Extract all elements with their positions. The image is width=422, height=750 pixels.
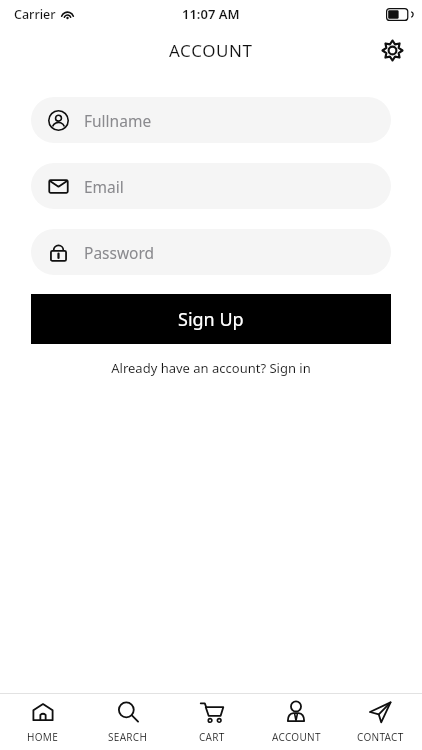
staticText: Carrier: [14, 6, 56, 23]
button[interactable]: Fullname: [31, 97, 391, 143]
staticText: Fullname: [84, 110, 152, 131]
staticText: Email: [84, 176, 124, 197]
staticText: ACCOUNT: [169, 39, 253, 62]
button[interactable]: SEARCH: [85, 694, 170, 750]
button[interactable]: Settings: [376, 34, 408, 66]
staticText: CART: [199, 730, 225, 744]
staticText: Password: [84, 242, 155, 263]
button[interactable]: CONTACT: [338, 694, 422, 750]
button[interactable]: Email: [31, 163, 391, 209]
staticText: HOME: [27, 730, 59, 744]
staticText: Sign Up: [178, 307, 244, 332]
button[interactable]: Sign Up: [31, 294, 391, 344]
button[interactable]: CART: [170, 694, 254, 750]
staticText: ACCOUNT: [272, 730, 321, 744]
staticText: 11:07 AM: [182, 5, 240, 23]
staticText: CONTACT: [357, 730, 404, 744]
staticText: Already have an account? Sign in: [111, 359, 311, 377]
button[interactable]: HOME: [0, 694, 85, 750]
button[interactable]: Already have an account? Sign in: [103, 356, 319, 380]
staticText: SEARCH: [108, 730, 148, 744]
button[interactable]: Password: [31, 229, 391, 275]
button[interactable]: ACCOUNT: [254, 694, 338, 750]
